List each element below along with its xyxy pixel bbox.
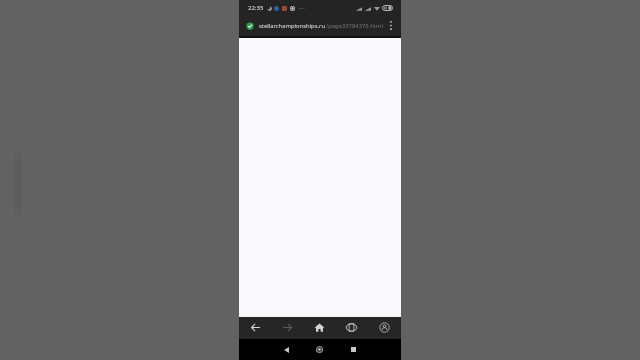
button[interactable]: Site security info: [244, 20, 255, 31]
button[interactable]: Back: [244, 317, 266, 339]
button[interactable]: Account: [373, 317, 395, 339]
button[interactable]: Home: [308, 317, 330, 339]
staticText: /page33784376.html: [326, 22, 383, 30]
button[interactable]: Back: [276, 339, 296, 360]
button[interactable]: Home: [309, 339, 329, 360]
staticText: stellarchampionships.ru: [259, 22, 326, 30]
button[interactable]: stellarchampionships.ru: [259, 16, 384, 35]
button[interactable]: Recents: [343, 339, 363, 360]
button[interactable]: Forward: [276, 317, 298, 339]
button[interactable]: Tabs: [340, 317, 362, 339]
button[interactable]: More options: [384, 16, 397, 35]
staticText: 22:35: [248, 4, 264, 12]
